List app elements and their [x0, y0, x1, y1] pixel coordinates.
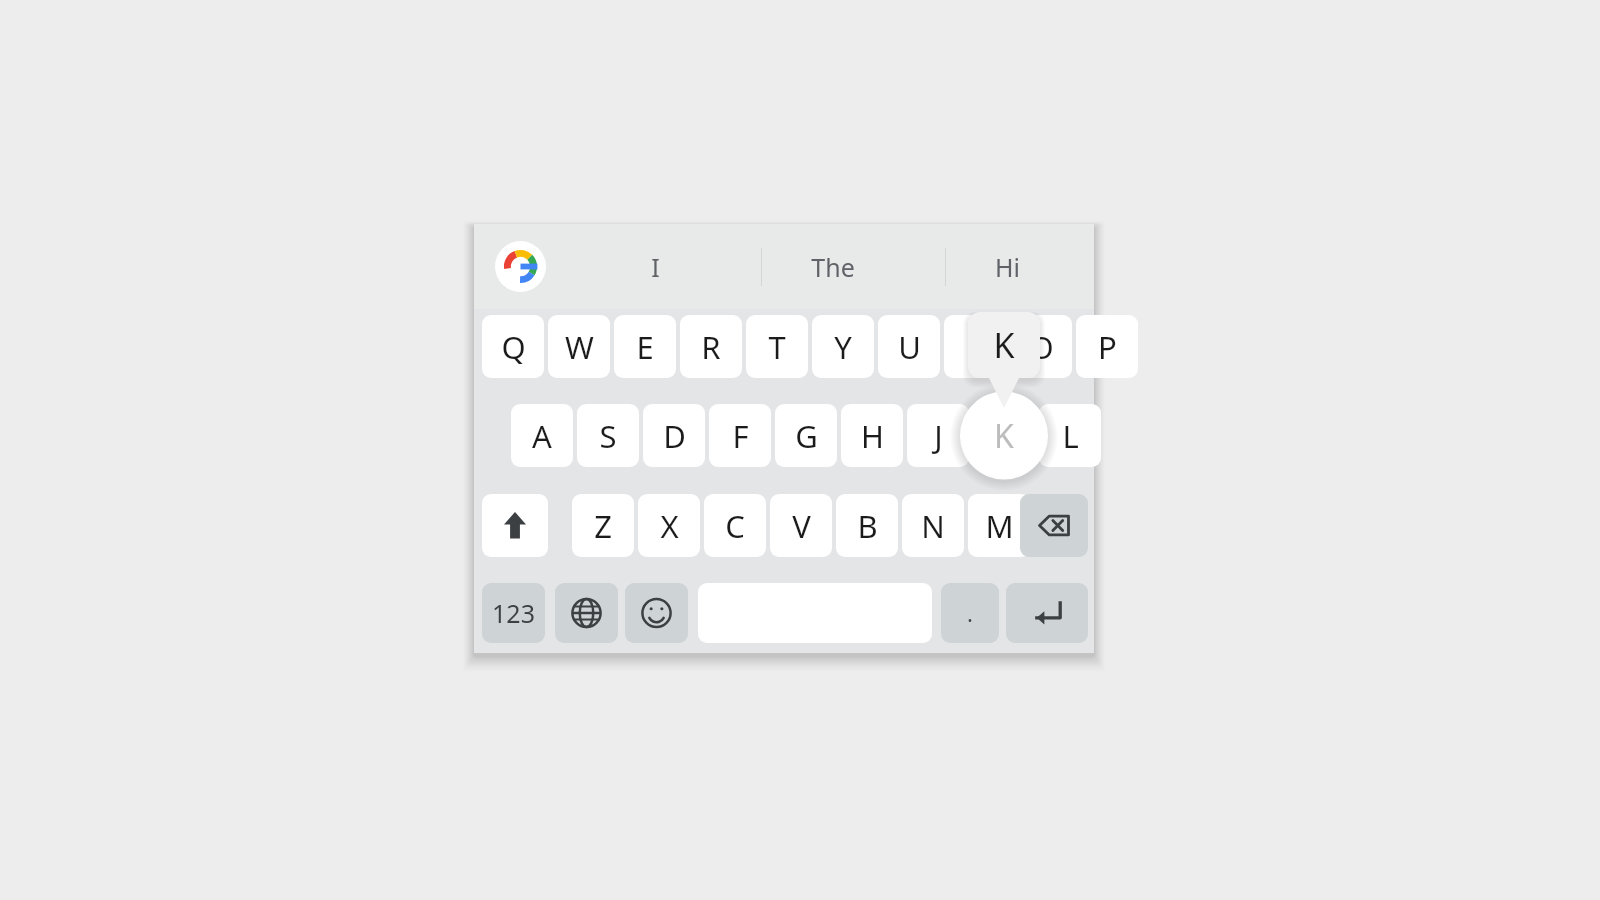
staticText: S [599, 415, 617, 457]
button[interactable]: 123 [482, 583, 545, 643]
button[interactable]: E [614, 315, 676, 378]
button[interactable]: Change language [555, 583, 618, 643]
button[interactable]: K [960, 392, 1048, 480]
staticText: B [857, 505, 878, 547]
button[interactable]: I [569, 230, 741, 303]
button[interactable]: C [704, 494, 766, 557]
staticText: E [636, 326, 654, 368]
staticText: The [811, 250, 855, 284]
button[interactable]: O [1010, 315, 1072, 378]
staticText: K [993, 322, 1015, 368]
button[interactable]: Enter [1006, 583, 1088, 643]
staticText: V [792, 505, 811, 547]
button[interactable]: W [548, 315, 610, 378]
staticText: D [663, 415, 686, 457]
staticText: X [660, 505, 679, 547]
staticText: F [732, 415, 749, 457]
staticText: H [861, 415, 884, 457]
button[interactable]: The [747, 230, 919, 303]
button[interactable]: R [680, 315, 742, 378]
button[interactable]: V [770, 494, 832, 557]
staticText: Y [834, 326, 852, 368]
staticText: . [967, 598, 973, 628]
staticText: J [934, 415, 943, 457]
staticText: N [921, 505, 945, 547]
staticText: W [565, 326, 594, 368]
staticText: 123 [492, 596, 535, 630]
button[interactable]: I [944, 315, 1006, 378]
button[interactable]: G [775, 404, 837, 467]
button[interactable]: Q [482, 315, 544, 378]
staticText: O [1029, 326, 1054, 368]
staticText: K [994, 414, 1014, 458]
button[interactable]: U [878, 315, 940, 378]
staticText: C [725, 505, 745, 547]
staticText: Q [501, 326, 526, 368]
staticText: L [1062, 415, 1079, 457]
button[interactable]: P [1076, 315, 1138, 378]
staticText: R [701, 326, 721, 368]
button[interactable]: Shift [482, 494, 548, 557]
button[interactable]: J [907, 404, 969, 467]
staticText: K [994, 415, 1014, 457]
button[interactable]: X [638, 494, 700, 557]
button[interactable]: Backspace [1020, 494, 1088, 557]
staticText: G [795, 415, 818, 457]
button[interactable]: Z [572, 494, 634, 557]
staticText: I [651, 250, 660, 284]
button[interactable]: Y [812, 315, 874, 378]
staticText: Hi [995, 250, 1020, 284]
button[interactable]: . [941, 583, 999, 643]
staticText: P [1098, 326, 1117, 368]
button[interactable]: D [643, 404, 705, 467]
staticText: U [898, 326, 921, 368]
button[interactable]: L [1039, 404, 1101, 467]
button[interactable]: Hi [921, 230, 1093, 303]
staticText: M [985, 505, 1014, 547]
button[interactable]: Google [495, 241, 546, 292]
button[interactable]: S [577, 404, 639, 467]
staticText: T [768, 326, 786, 368]
button[interactable]: K [973, 404, 1035, 467]
button[interactable]: A [511, 404, 573, 467]
staticText: A [532, 415, 552, 457]
button[interactable]: H [841, 404, 903, 467]
staticText: Z [594, 505, 612, 547]
button[interactable]: M [968, 494, 1030, 557]
button[interactable]: T [746, 315, 808, 378]
button[interactable]: N [902, 494, 964, 557]
button[interactable]: Emoji [625, 583, 688, 643]
button[interactable]: B [836, 494, 898, 557]
button[interactable]: F [709, 404, 771, 467]
